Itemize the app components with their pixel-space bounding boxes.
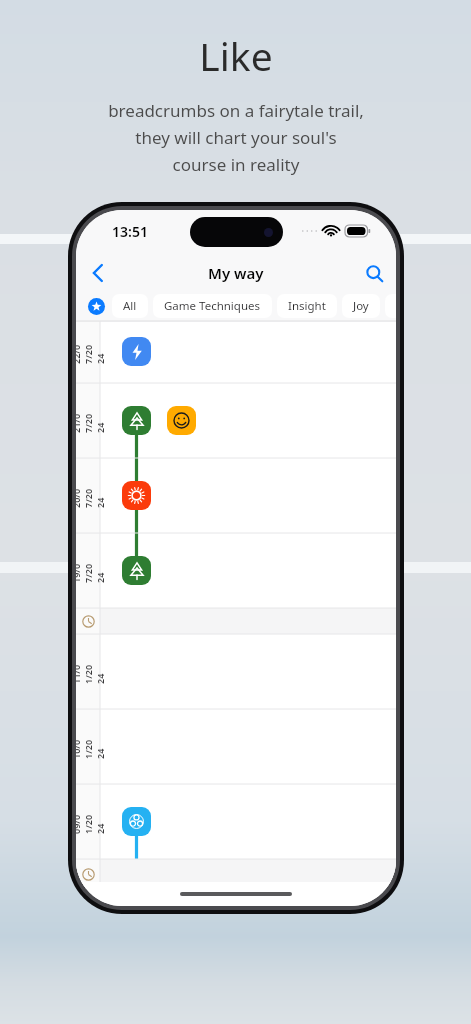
button[interactable]: Insight (277, 294, 337, 318)
staticText: 20/07/2024 (76, 484, 106, 508)
button[interactable]: Favorites (82, 292, 110, 320)
staticText: 21/07/2024 (76, 409, 106, 433)
button[interactable]: Game Techniques (153, 294, 272, 318)
staticText: Joy (353, 298, 369, 314)
staticText: 11/01/2024 (76, 660, 106, 684)
button[interactable]: Nature (122, 406, 151, 435)
staticText: breadcrumbs on a fairytale trail, they w… (108, 99, 364, 176)
staticText: Like (199, 29, 273, 82)
button[interactable]: Sun (122, 481, 151, 510)
staticText: My way (208, 263, 264, 283)
button[interactable]: Energy (122, 337, 151, 366)
button[interactable]: Group (122, 807, 151, 836)
staticText: Insight (288, 298, 326, 314)
staticText: 13:51 (112, 222, 148, 241)
staticText: 19/07/2024 (76, 559, 106, 583)
button[interactable]: Search (352, 256, 396, 290)
staticText: 22/07/2024 (76, 340, 106, 364)
button[interactable]: Nature (122, 556, 151, 585)
staticText: Game Techniques (164, 298, 261, 314)
button[interactable]: All (112, 294, 148, 318)
button[interactable]: Mood (167, 406, 196, 435)
button[interactable]: Joy (342, 294, 380, 318)
staticText: All (123, 298, 137, 314)
staticText: 10/01/2024 (76, 735, 106, 759)
button[interactable]: Back (76, 256, 120, 290)
staticText: 09/01/2024 (76, 810, 106, 834)
